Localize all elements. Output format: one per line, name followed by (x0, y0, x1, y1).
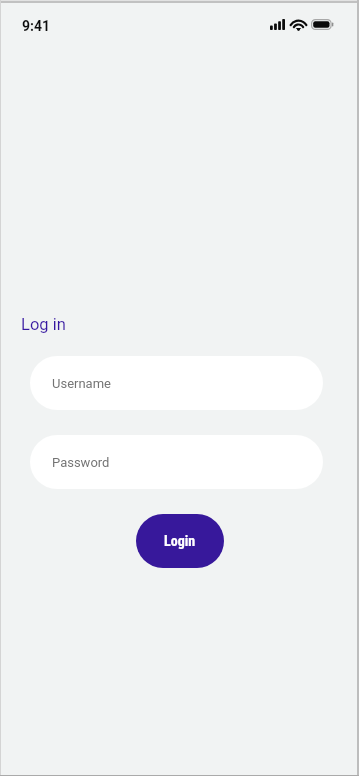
button[interactable]: Login (136, 514, 224, 568)
staticText: Password (52, 455, 110, 470)
button[interactable]: Username (30, 356, 323, 410)
staticText: 9:41 (22, 18, 51, 34)
other: Battery (311, 19, 334, 30)
other: Cellular signal (270, 19, 285, 30)
staticText: Log in (21, 315, 66, 334)
button[interactable]: Password (30, 435, 323, 489)
staticText: Username (52, 376, 111, 391)
staticText: Login (164, 533, 196, 549)
other: Wi-Fi (291, 19, 306, 30)
